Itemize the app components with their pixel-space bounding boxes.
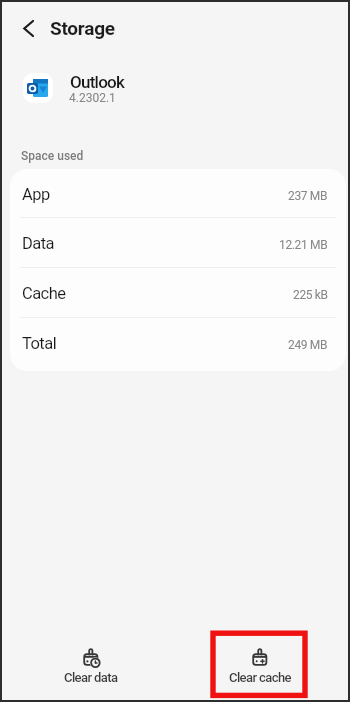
button[interactable]: App — [10, 169, 346, 217]
staticText: App — [22, 185, 50, 204]
staticText: Outlook — [70, 72, 125, 92]
staticText: 12.21 MB — [279, 238, 328, 252]
staticText: 4.2302.1 — [69, 91, 116, 105]
staticText: Space used — [21, 149, 84, 163]
button[interactable]: Clear cache — [205, 647, 315, 695]
button[interactable]: Cache — [10, 267, 346, 317]
button[interactable]: Total — [10, 317, 346, 367]
staticText: 237 MB — [288, 189, 328, 203]
button[interactable]: Clear data — [36, 647, 146, 695]
staticText: Storage — [50, 17, 115, 39]
staticText: Cache — [22, 284, 66, 303]
staticText: Total — [22, 334, 57, 353]
staticText: Clear cache — [229, 670, 291, 685]
staticText: 225 kB — [293, 288, 328, 302]
staticText: 249 MB — [288, 338, 328, 352]
button[interactable] — [11, 11, 45, 45]
staticText: Clear data — [64, 670, 118, 685]
button[interactable]: Data — [10, 217, 346, 267]
staticText: Data — [22, 234, 54, 253]
